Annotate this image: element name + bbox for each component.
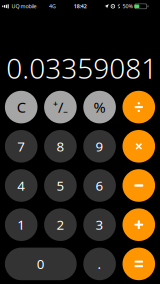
staticText: C	[17, 97, 26, 117]
staticText: ⁺/₋	[53, 97, 68, 117]
staticText: 2	[56, 216, 64, 233]
staticText: 50%	[122, 3, 132, 10]
button[interactable]: Multiply	[122, 130, 155, 163]
button[interactable]: Divide	[122, 91, 155, 123]
staticText: 3	[96, 216, 104, 233]
staticText: 4G	[49, 3, 56, 10]
staticText: 8	[56, 137, 64, 155]
staticText: 7	[17, 137, 25, 155]
button[interactable]: %	[83, 91, 116, 123]
button[interactable]: Subtract	[122, 169, 155, 202]
button[interactable]: 0	[5, 248, 77, 280]
button[interactable]: .	[83, 248, 116, 280]
button[interactable]: 6	[83, 169, 116, 202]
button[interactable]: 8	[44, 130, 77, 163]
staticText: 1	[17, 216, 25, 233]
button[interactable]: 2	[44, 208, 77, 241]
button[interactable]: C	[5, 91, 37, 123]
staticText: 9	[96, 137, 104, 155]
button[interactable]: 3	[83, 208, 116, 241]
staticText: 6	[96, 177, 104, 194]
button[interactable]: Add	[122, 208, 155, 241]
button[interactable]: 1	[5, 208, 37, 241]
staticText: 5	[56, 177, 64, 194]
staticText: .	[98, 255, 102, 273]
staticText: 18:42	[74, 3, 87, 10]
button[interactable]: ⁺/₋	[44, 91, 77, 123]
staticText: 4	[17, 177, 25, 194]
button[interactable]: 4	[5, 169, 37, 202]
button[interactable]: 7	[5, 130, 37, 163]
staticText: UQ mobile	[11, 3, 36, 10]
button[interactable]: 9	[83, 130, 116, 163]
button[interactable]: 5	[44, 169, 77, 202]
staticText: 0.03359081	[6, 49, 157, 86]
staticText: %	[94, 97, 106, 117]
button[interactable]: Equals	[122, 248, 155, 280]
staticText: 0	[37, 255, 45, 273]
